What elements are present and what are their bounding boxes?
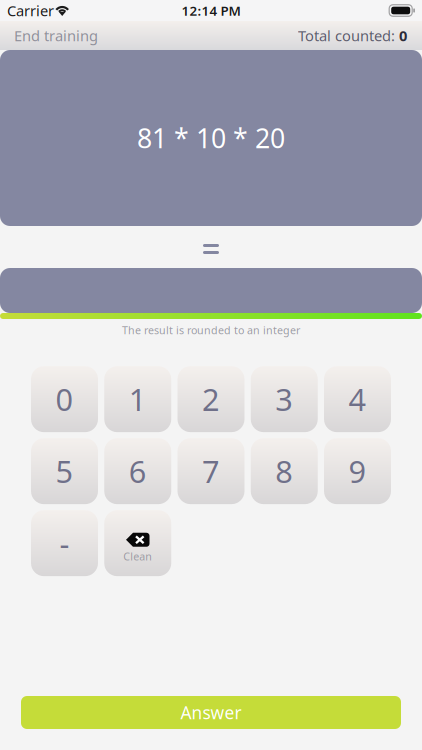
staticText: 0 [399,26,407,45]
staticText: 5 [55,451,73,491]
staticText: 12:14 PM [181,2,240,19]
button[interactable]: 8 [251,438,318,504]
button[interactable]: 3 [251,366,318,432]
button[interactable]: 7 [177,438,244,504]
button[interactable]: 2 [177,366,244,432]
staticText: - [59,523,69,563]
button[interactable]: 9 [324,438,391,504]
button[interactable]: - [31,510,98,576]
button[interactable]: Answer [21,696,401,729]
staticText: 7 [202,451,220,491]
button[interactable]: 5 [31,438,98,504]
button[interactable]: 4 [324,366,391,432]
staticText: 1 [129,379,147,419]
staticText: Carrier [7,1,54,20]
staticText: The result is rounded to an integer [122,323,300,337]
staticText: 9 [348,451,366,491]
staticText: 0 [55,379,73,419]
staticText: Answer [180,701,241,724]
staticText: Clean [123,549,152,564]
staticText: 2 [202,379,220,419]
button[interactable]: Total counted: [289,22,422,49]
staticText: Total counted: [298,26,399,45]
staticText: End training [14,26,98,45]
staticText: 6 [129,451,147,491]
staticText: 81 * 10 * 20 [137,120,285,156]
button[interactable]: End training [0,22,107,49]
button[interactable]: 1 [104,366,171,432]
button[interactable]: 6 [104,438,171,504]
staticText: 3 [275,379,293,419]
staticText: 4 [348,379,366,419]
staticText: 8 [275,451,293,491]
button[interactable]: Clean [104,510,171,576]
button[interactable]: 0 [31,366,98,432]
